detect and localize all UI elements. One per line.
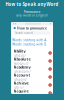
button[interactable]: Search a word [11, 31, 53, 35]
staticText: Pronounce [23, 9, 40, 14]
staticText: Search a word [15, 31, 33, 35]
button[interactable]: Account [11, 73, 53, 81]
staticText: /ˈæbsəluːt/ [14, 61, 29, 66]
button[interactable]: Words starting with B [12, 42, 46, 46]
button[interactable]: Academy [11, 65, 53, 73]
staticText: /əˈkædəmi/ [14, 69, 31, 74]
staticText: Absolute [14, 56, 31, 62]
staticText: any word in English [16, 13, 48, 18]
button[interactable]: Achieve [11, 81, 53, 89]
staticText: Academy [14, 64, 31, 70]
staticText: Acquire [14, 88, 29, 94]
staticText: How to Speak any Word [5, 1, 58, 7]
staticText: Words starting with B [12, 42, 46, 46]
button[interactable]: Ability [11, 49, 53, 57]
staticText: Achieve [14, 80, 29, 86]
staticText: Words starting with A [12, 38, 46, 42]
staticText: /əˈbɪləti/ [14, 53, 26, 58]
staticText: Account [14, 72, 31, 78]
staticText: /əˈkaʊnt/ [14, 77, 27, 82]
staticText: How to pronounce [17, 26, 47, 30]
button[interactable]: Words starting with A [12, 38, 46, 42]
button[interactable]: Acquire [11, 89, 53, 97]
staticText: Ability [14, 48, 26, 54]
staticText: /əˈtʃiːv/ [14, 85, 24, 90]
button[interactable]: Absolute [11, 57, 53, 65]
